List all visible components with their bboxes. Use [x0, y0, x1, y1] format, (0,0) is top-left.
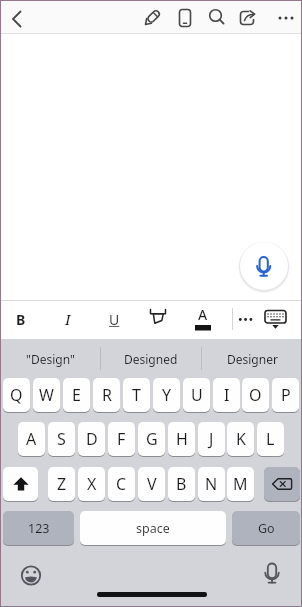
staticText: R	[102, 384, 112, 406]
button[interactable]: U	[100, 302, 128, 336]
button[interactable]	[238, 240, 290, 292]
button[interactable]: C	[108, 467, 135, 501]
button[interactable]: U	[183, 378, 210, 412]
button[interactable]	[138, 4, 166, 32]
button[interactable]: T	[123, 378, 150, 412]
button[interactable]	[14, 558, 48, 592]
button[interactable]: "Design"	[0, 340, 100, 377]
staticText: S	[57, 428, 66, 450]
button[interactable]: K	[227, 422, 254, 456]
button[interactable]	[234, 4, 262, 32]
staticText: N	[205, 473, 218, 495]
staticText: space	[136, 520, 170, 537]
staticText: L	[266, 428, 275, 450]
staticText: H	[176, 428, 188, 450]
button[interactable]: Z	[48, 467, 75, 501]
button[interactable]	[203, 4, 231, 32]
button[interactable]: A	[18, 422, 45, 456]
staticText: I	[224, 384, 230, 406]
button[interactable]: G	[138, 422, 165, 456]
button[interactable]	[237, 302, 254, 336]
button[interactable]: P	[272, 378, 299, 412]
staticText: V	[147, 473, 157, 495]
button[interactable]: W	[33, 378, 60, 412]
button[interactable]: R	[93, 378, 120, 412]
button[interactable]: I	[213, 378, 240, 412]
staticText: X	[87, 473, 97, 495]
button[interactable]: N	[198, 467, 225, 501]
button[interactable]: B	[168, 467, 195, 501]
button[interactable]: Q	[3, 378, 30, 412]
staticText: Q	[10, 384, 23, 406]
button[interactable]: 123	[3, 511, 74, 545]
button[interactable]: Designer	[202, 340, 302, 377]
button[interactable]: space	[80, 511, 226, 545]
staticText: D	[86, 428, 98, 450]
button[interactable]: D	[78, 422, 105, 456]
button[interactable]	[264, 467, 300, 501]
button[interactable]: Go	[232, 511, 300, 545]
button[interactable]	[272, 4, 300, 32]
staticText: U	[109, 310, 120, 329]
staticText: Y	[162, 384, 172, 406]
staticText: Go	[258, 520, 275, 537]
staticText: Designed	[124, 351, 178, 367]
button[interactable]	[261, 302, 291, 336]
button[interactable]	[3, 467, 38, 501]
button[interactable]: B	[7, 302, 35, 336]
button[interactable]	[256, 556, 288, 592]
staticText: C	[116, 473, 127, 495]
button[interactable]	[4, 4, 30, 32]
button[interactable]: O	[242, 378, 269, 412]
button[interactable]: I	[54, 302, 82, 336]
staticText: "Design"	[26, 351, 75, 367]
staticText: E	[72, 384, 81, 406]
button[interactable]	[171, 4, 199, 32]
staticText: B	[176, 473, 187, 495]
button[interactable]: Designed	[101, 340, 201, 377]
staticText: I	[65, 309, 71, 329]
staticText: A	[26, 428, 37, 450]
button[interactable]: V	[138, 467, 165, 501]
staticText: B	[16, 310, 26, 329]
staticText: F	[117, 428, 126, 450]
button[interactable]: S	[48, 422, 75, 456]
staticText: K	[236, 428, 246, 450]
button[interactable]	[144, 302, 172, 336]
staticText: M	[233, 473, 248, 495]
staticText: Z	[57, 473, 67, 495]
button[interactable]: M	[227, 467, 254, 501]
button[interactable]: A	[189, 302, 217, 336]
button[interactable]: F	[108, 422, 135, 456]
staticText: 123	[28, 520, 50, 537]
button[interactable]: E	[63, 378, 90, 412]
staticText: G	[146, 428, 158, 450]
button[interactable]: X	[78, 467, 105, 501]
button[interactable]: H	[168, 422, 195, 456]
staticText: U	[191, 384, 203, 406]
button[interactable]: L	[257, 422, 284, 456]
button[interactable]: Y	[153, 378, 180, 412]
staticText: J	[209, 428, 214, 450]
staticText: P	[281, 384, 291, 406]
staticText: T	[132, 384, 141, 406]
staticText: O	[249, 384, 262, 406]
staticText: W	[39, 384, 54, 406]
staticText: A	[198, 305, 208, 324]
staticText: Designer	[227, 351, 278, 367]
button[interactable]: J	[198, 422, 225, 456]
